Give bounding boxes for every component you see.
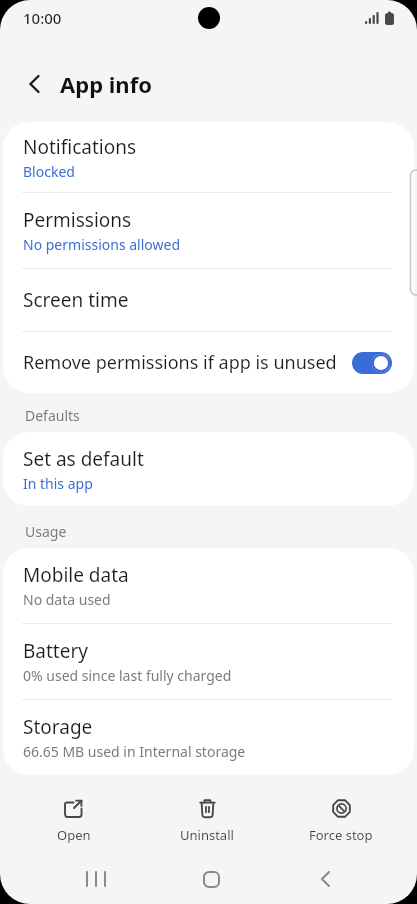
button[interactable]: Uninstall bbox=[140, 775, 274, 845]
button[interactable]: Battery bbox=[3, 624, 414, 699]
button[interactable] bbox=[197, 865, 225, 893]
button[interactable]: Notifications bbox=[3, 122, 414, 192]
staticText: Permissions bbox=[23, 207, 132, 233]
staticText: Screen time bbox=[23, 287, 129, 313]
staticText: Defaults bbox=[25, 406, 80, 425]
staticText: Mobile data bbox=[23, 562, 129, 588]
button[interactable] bbox=[311, 865, 339, 893]
button[interactable]: Force stop bbox=[274, 775, 408, 845]
button[interactable]: Mobile data bbox=[3, 548, 414, 623]
staticText: Battery bbox=[23, 638, 88, 664]
button[interactable]: Screen time bbox=[3, 269, 414, 331]
staticText: 66.65 MB used in Internal storage bbox=[23, 742, 246, 761]
button[interactable] bbox=[13, 62, 57, 106]
staticText: Uninstall bbox=[180, 826, 234, 844]
staticText: Set as default bbox=[23, 446, 144, 472]
button[interactable]: Storage bbox=[3, 700, 414, 775]
staticText: 10:00 bbox=[23, 8, 62, 28]
staticText: App info bbox=[60, 69, 152, 99]
staticText: No data used bbox=[23, 590, 111, 609]
staticText: Force stop bbox=[309, 826, 373, 844]
staticText: Storage bbox=[23, 714, 93, 740]
button[interactable]: Open bbox=[7, 775, 140, 845]
button[interactable]: Set as default bbox=[3, 432, 414, 506]
staticText: No permissions allowed bbox=[23, 235, 181, 254]
staticText: Open bbox=[57, 826, 91, 844]
staticText: In this app bbox=[23, 474, 93, 493]
staticText: 0% used since last fully charged bbox=[23, 666, 232, 685]
button[interactable] bbox=[352, 352, 392, 374]
button[interactable]: Permissions bbox=[3, 193, 414, 268]
button[interactable] bbox=[83, 865, 111, 893]
staticText: Notifications bbox=[23, 134, 137, 160]
staticText: Usage bbox=[25, 522, 67, 541]
staticText: Remove permissions if app is unused bbox=[23, 350, 352, 375]
button[interactable]: Remove permissions if app is unused bbox=[3, 332, 414, 393]
staticText: Blocked bbox=[23, 162, 75, 181]
